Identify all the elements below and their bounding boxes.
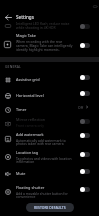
staticText: Floating shutter (16, 185, 45, 190)
button[interactable]: Toggle (78, 89, 92, 97)
button[interactable] (0, 32, 99, 55)
staticText: Mirror reflection (16, 117, 46, 122)
staticText: Mute (16, 171, 26, 176)
button[interactable] (0, 73, 99, 86)
button[interactable]: Toggle (78, 131, 92, 139)
button[interactable]: Toggle (78, 41, 92, 49)
staticText: GENERAL (5, 64, 22, 68)
staticText: Location tag (16, 150, 39, 155)
staticText: When recording with the rear camera, Mag… (16, 39, 73, 52)
staticText: Magic Take (16, 33, 36, 38)
staticText: Timer (16, 107, 27, 112)
button[interactable]: Toggle (78, 117, 92, 125)
button[interactable]: Toggle (78, 73, 92, 81)
button[interactable] (0, 167, 99, 180)
staticText: Front camera only (16, 123, 73, 127)
staticText: Assistive grid (16, 77, 40, 82)
staticText: Add a movable shutter button for conveni… (16, 191, 73, 199)
staticText: Horizontal level (16, 93, 44, 98)
staticText: Intelligent LED flash, reduce noise whil… (16, 21, 73, 30)
button[interactable] (0, 184, 99, 199)
button[interactable] (0, 103, 99, 116)
button[interactable]: Off (78, 103, 89, 111)
button[interactable]: Toggle (78, 22, 92, 30)
button[interactable] (0, 131, 99, 146)
button[interactable] (0, 19, 99, 32)
button[interactable] (0, 89, 99, 102)
staticText: Automatically add watermark to photos ta… (16, 138, 73, 146)
button[interactable]: Toggle (78, 185, 92, 193)
button[interactable] (0, 116, 99, 131)
staticText: Add watermark (16, 132, 44, 137)
staticText: Off (78, 105, 83, 110)
button[interactable]: Toggle (78, 150, 92, 158)
staticText: Tag photos and videos with location info… (16, 156, 73, 164)
button[interactable]: Toggle (78, 167, 92, 175)
button[interactable] (0, 149, 99, 164)
button[interactable]: RESTORE DEFAULTS (26, 203, 74, 212)
button[interactable]: Back (1, 10, 15, 24)
staticText: RESTORE DEFAULTS (34, 205, 66, 210)
staticText: Settings (16, 14, 34, 20)
